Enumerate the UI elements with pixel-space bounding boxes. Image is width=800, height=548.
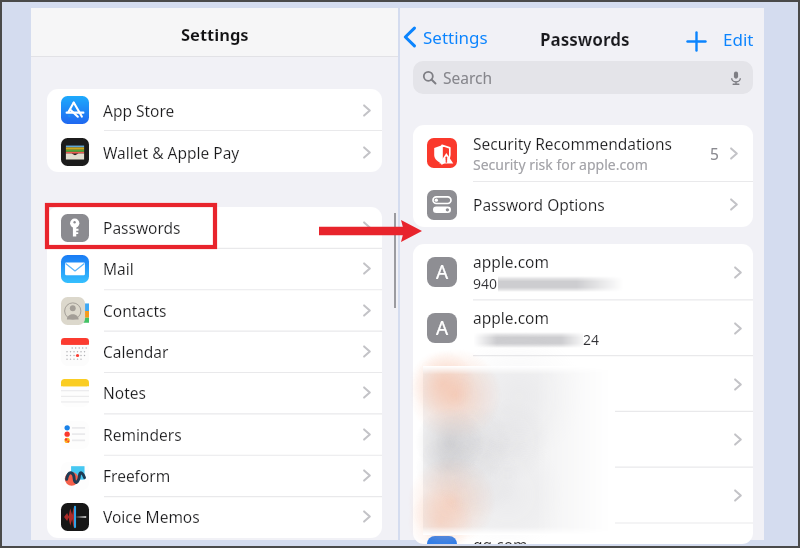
button[interactable]: Add password [682, 27, 710, 55]
staticText: Edit [723, 28, 754, 51]
button[interactable]: Wallet & Apple Pay [47, 131, 382, 172]
staticText: A [436, 371, 449, 397]
staticText: Freeform [103, 465, 359, 486]
button[interactable]: A [413, 244, 753, 300]
button[interactable]: Settings [399, 21, 494, 53]
button[interactable]: A [413, 467, 753, 523]
button[interactable]: A [413, 411, 753, 467]
button[interactable]: Edit [723, 28, 754, 51]
staticText: 24 [583, 330, 600, 349]
staticText: 5 [710, 143, 719, 164]
button[interactable]: Password Options [413, 182, 753, 227]
button[interactable]: Mail [47, 248, 382, 289]
button[interactable]: Search [413, 61, 753, 94]
staticText: Contacts [103, 300, 359, 321]
button[interactable]: A [413, 356, 753, 412]
staticText: Settings [181, 23, 249, 45]
button[interactable]: Calendar [47, 331, 382, 372]
staticText: 940 [473, 274, 498, 293]
staticText: Search [443, 67, 493, 88]
staticText: A [436, 259, 449, 285]
staticText: Passwords [103, 217, 359, 238]
button[interactable]: Voice Memos [47, 496, 382, 537]
staticText: Passwords [540, 28, 630, 51]
staticText: Security risk for apple.com [473, 155, 648, 174]
staticText: Notes [103, 382, 359, 403]
staticText: apple.com [473, 307, 549, 328]
staticText: A [436, 426, 449, 452]
staticText: qq.com [473, 534, 528, 544]
staticText: Wallet & Apple Pay [103, 142, 359, 163]
button[interactable]: Contacts [47, 290, 382, 331]
staticText: Security Recommendations [473, 133, 672, 154]
button[interactable]: Notes [47, 372, 382, 413]
button[interactable]: A [413, 300, 753, 356]
staticText: Password Options [473, 194, 726, 215]
staticText: apple.com [473, 251, 549, 272]
staticText: Voice Memos [103, 506, 359, 527]
staticText: A [436, 315, 449, 341]
button[interactable]: Passwords [47, 207, 382, 248]
button[interactable]: Freeform [47, 455, 382, 496]
button[interactable]: App Store [47, 89, 382, 131]
staticText: Settings [423, 26, 488, 49]
staticText: A [436, 482, 449, 508]
staticText: Mail [103, 258, 359, 279]
button[interactable]: Security Recommendations [413, 125, 753, 181]
staticText: App Store [103, 100, 359, 121]
button[interactable]: Reminders [47, 414, 382, 455]
staticText: Reminders [103, 424, 359, 445]
staticText: Calendar [103, 341, 359, 362]
button[interactable]: qq.com [413, 523, 753, 544]
